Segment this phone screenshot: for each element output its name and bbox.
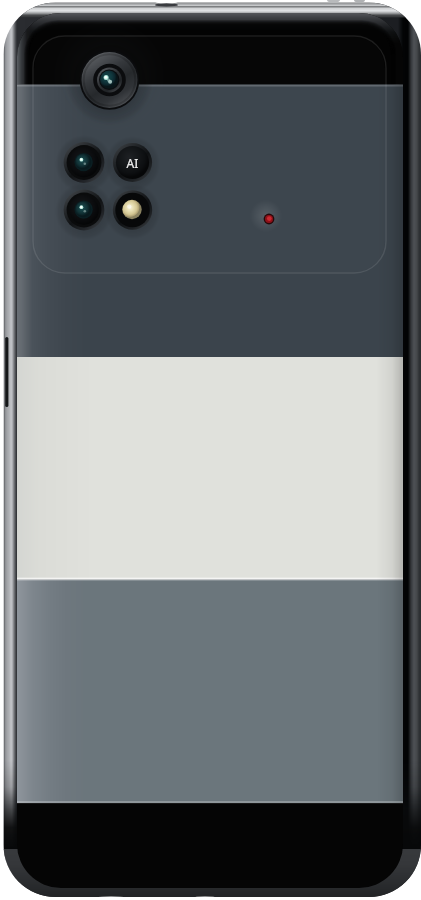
button[interactable]: Phone case back view [0, 0, 421, 900]
